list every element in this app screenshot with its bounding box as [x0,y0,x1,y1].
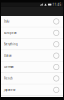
staticText: Italian [4,54,12,57]
staticText: French [4,77,13,80]
button[interactable]: French [1,73,63,84]
button[interactable]: Italian [1,50,63,62]
staticText: Everything [4,42,18,46]
button[interactable]: German [1,62,63,73]
button[interactable]: Everything [1,39,63,50]
button[interactable]: Italy [1,16,63,27]
staticText: European [4,31,17,35]
staticText: Italy [4,20,9,23]
staticText: Japanese [4,88,16,92]
button[interactable]: Japanese [1,84,63,96]
button[interactable]: European [1,27,63,39]
staticText: 11:45 [52,3,61,6]
staticText: German [4,65,14,69]
